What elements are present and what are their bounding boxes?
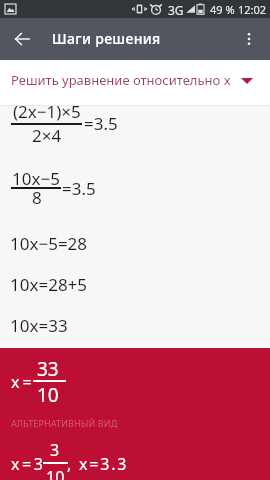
staticText: 12:02 — [238, 2, 267, 17]
button[interactable]: Back — [2, 19, 42, 59]
button[interactable]: More options — [229, 19, 269, 59]
staticText: 10x−5=28 — [10, 232, 88, 255]
staticText: 10x=28+5 — [10, 273, 88, 296]
staticText: =3.5 — [62, 177, 96, 200]
staticText: 49 % — [210, 2, 235, 17]
staticText: 10 — [46, 466, 65, 480]
staticText: АЛЬТЕРНАТИВНЫЙ ВИД — [11, 417, 118, 429]
staticText: 10x−5 — [12, 167, 60, 190]
staticText: =3.5 — [84, 112, 118, 135]
button[interactable]: Решить уравнение относительно x — [0, 60, 270, 106]
staticText: Шаги решения — [52, 29, 161, 48]
staticText: 33 — [37, 356, 59, 382]
staticText: , x=3.3 — [67, 453, 129, 475]
staticText: 3G — [168, 2, 184, 18]
staticText: 2×4 — [32, 124, 62, 147]
staticText: x= — [11, 371, 35, 393]
staticText: Решить уравнение относительно x — [11, 71, 231, 89]
staticText: x=3 — [11, 453, 46, 475]
staticText: 3 — [50, 439, 60, 461]
staticText: (2x−1)×5 — [13, 100, 81, 123]
staticText: 8 — [32, 186, 42, 209]
staticText: 10x=33 — [10, 314, 68, 337]
staticText: 10 — [37, 382, 59, 408]
